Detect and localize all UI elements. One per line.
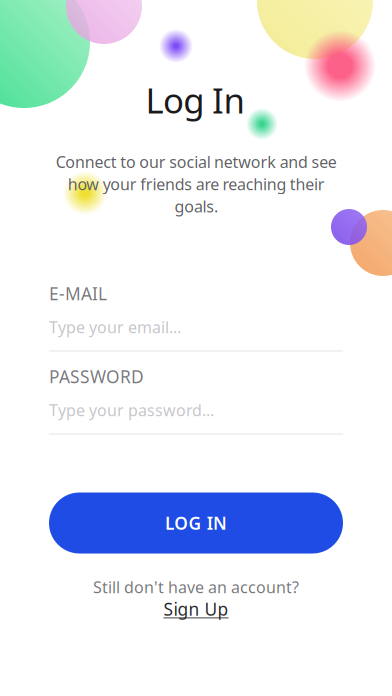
staticText: PASSWORD (49, 365, 144, 388)
staticText: Log In (145, 77, 244, 123)
button[interactable]: LOG IN (49, 492, 343, 553)
button[interactable]: Sign Up (163, 597, 228, 620)
staticText: Still don't have an account? (93, 576, 299, 598)
staticText: Type your email... (49, 316, 181, 338)
staticText: LOG IN (165, 511, 227, 534)
staticText: E-MAIL (49, 282, 107, 305)
button[interactable]: PASSWORD (49, 367, 343, 434)
staticText: Type your password... (49, 399, 214, 421)
button[interactable]: E-MAIL (49, 284, 343, 351)
staticText: Sign Up (163, 597, 228, 620)
staticText: Connect to our social network and see ho… (55, 151, 337, 217)
